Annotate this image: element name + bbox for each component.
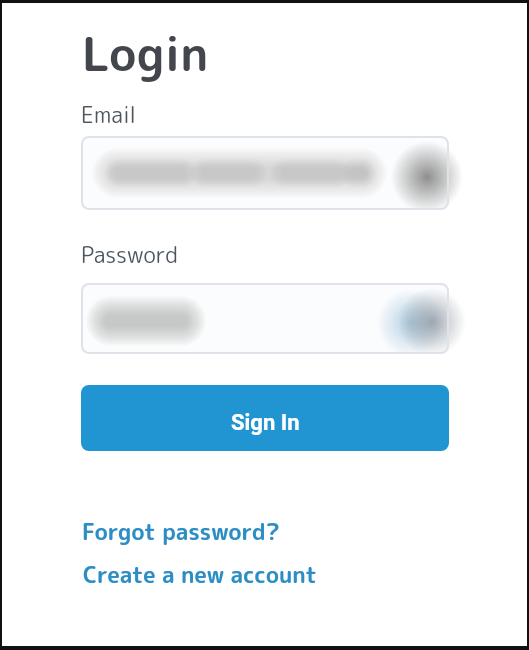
- staticText: Sign In: [231, 410, 300, 436]
- button[interactable]: [81, 136, 449, 210]
- staticText: Login: [82, 20, 209, 86]
- staticText: Email: [81, 99, 137, 130]
- staticText: Forgot password?: [82, 516, 280, 547]
- button[interactable]: Sign In: [81, 385, 449, 451]
- staticText: Create a new account: [83, 559, 318, 590]
- staticText: Password: [81, 239, 178, 270]
- button[interactable]: Forgot password?: [82, 516, 280, 547]
- button[interactable]: Create a new account: [83, 559, 318, 590]
- button[interactable]: [81, 283, 449, 354]
